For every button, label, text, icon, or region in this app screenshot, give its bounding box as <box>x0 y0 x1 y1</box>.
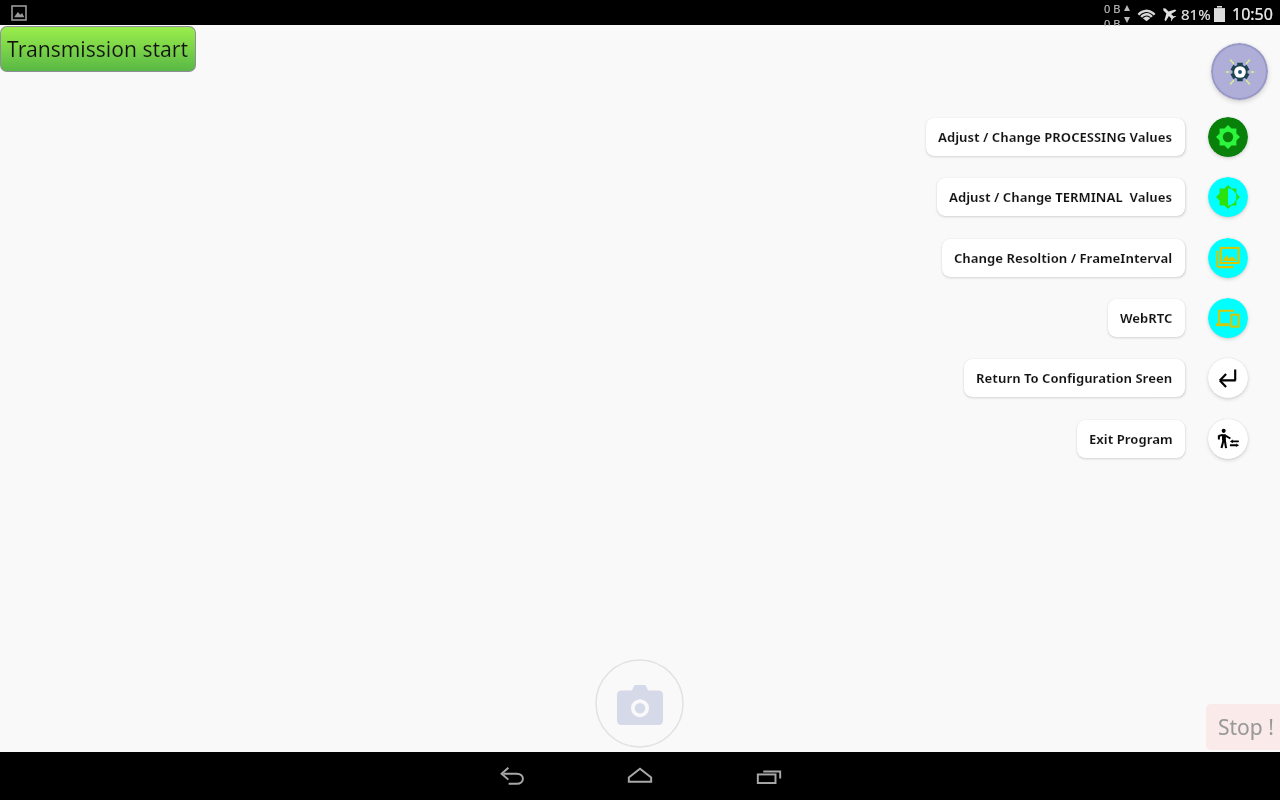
staticText: Stop ! <box>1218 713 1274 742</box>
button[interactable]: Stop ! <box>1206 704 1280 750</box>
button[interactable]: Exit Program <box>1208 419 1248 459</box>
button[interactable]: Back <box>480 752 544 800</box>
button[interactable]: Change Resoltion / FrameInterval <box>1208 238 1248 278</box>
button[interactable]: Camera preview <box>595 659 684 748</box>
button[interactable]: Change Resoltion / FrameInterval <box>942 239 1185 277</box>
button[interactable]: Adjust / Change PROCESSING Values <box>926 118 1185 156</box>
staticText: Adjust / Change TERMINAL Values <box>949 188 1173 206</box>
button[interactable]: Settings menu <box>1213 45 1266 98</box>
staticText: 81% <box>1181 4 1211 24</box>
button[interactable]: Home <box>608 752 672 800</box>
button[interactable]: Recents <box>737 752 801 800</box>
button[interactable]: Adjust / Change TERMINAL Values <box>937 178 1185 216</box>
staticText: Transmission start <box>7 35 189 64</box>
button[interactable]: WebRTC <box>1108 299 1185 337</box>
staticText: Return To Configuration Sreen <box>976 369 1173 387</box>
staticText: 0 B <box>1104 1 1121 16</box>
button[interactable]: Exit Program <box>1077 420 1185 458</box>
button[interactable]: Adjust / Change TERMINAL Values <box>1208 177 1248 217</box>
button[interactable]: Return To Configuration Sreen <box>1208 358 1248 398</box>
button[interactable]: Adjust / Change PROCESSING Values <box>1208 117 1248 157</box>
staticText: Adjust / Change PROCESSING Values <box>938 128 1173 146</box>
staticText: WebRTC <box>1120 309 1173 327</box>
staticText: 0 B <box>1104 16 1121 26</box>
button[interactable]: WebRTC <box>1208 298 1248 338</box>
button[interactable]: Transmission start <box>1 27 195 71</box>
button[interactable]: Return To Configuration Sreen <box>964 359 1185 397</box>
staticText: Change Resoltion / FrameInterval <box>954 249 1173 267</box>
staticText: Exit Program <box>1089 430 1173 448</box>
staticText: 10:50 <box>1232 3 1273 25</box>
